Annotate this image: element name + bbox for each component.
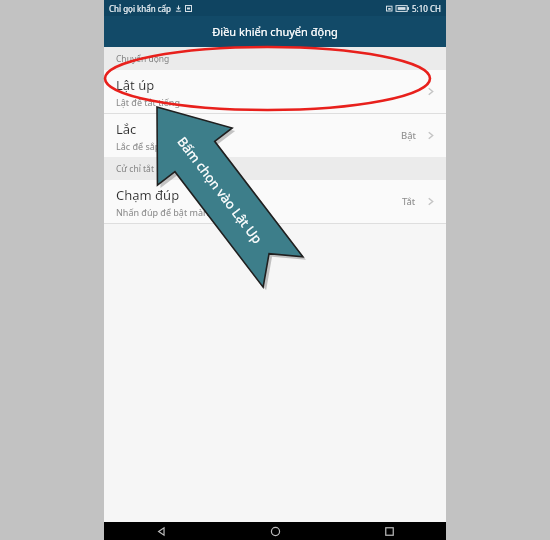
staticText: Lật để tắt tiếng (116, 96, 180, 108)
button[interactable]: Home (218, 522, 332, 540)
staticText: Bật (401, 129, 416, 142)
staticText: Điều khiển chuyển động (212, 24, 338, 39)
button[interactable]: Lắc (104, 114, 446, 157)
staticText: Bấm chọn vào Lật Up (173, 133, 267, 247)
staticText: Tắt (402, 195, 416, 208)
staticText: Nhấn đúp để bật màn hình (116, 206, 230, 218)
staticText: Chuyển động (116, 53, 170, 65)
staticText: Cử chỉ tắt màn hình (116, 163, 195, 175)
button[interactable]: Lật úp (104, 70, 446, 113)
button[interactable]: Recent apps (332, 522, 446, 540)
staticText: Chỉ gọi khẩn cấp (109, 3, 172, 14)
staticText: Lắc để sắp xếp lại (116, 140, 190, 152)
staticText: Lắc (116, 120, 137, 138)
staticText: Lật úp (116, 76, 155, 94)
staticText: Chạm đúp (116, 186, 180, 204)
button[interactable]: Back (104, 522, 218, 540)
button[interactable]: Chạm đúp (104, 180, 446, 223)
staticText: 5:10 CH (412, 3, 441, 14)
